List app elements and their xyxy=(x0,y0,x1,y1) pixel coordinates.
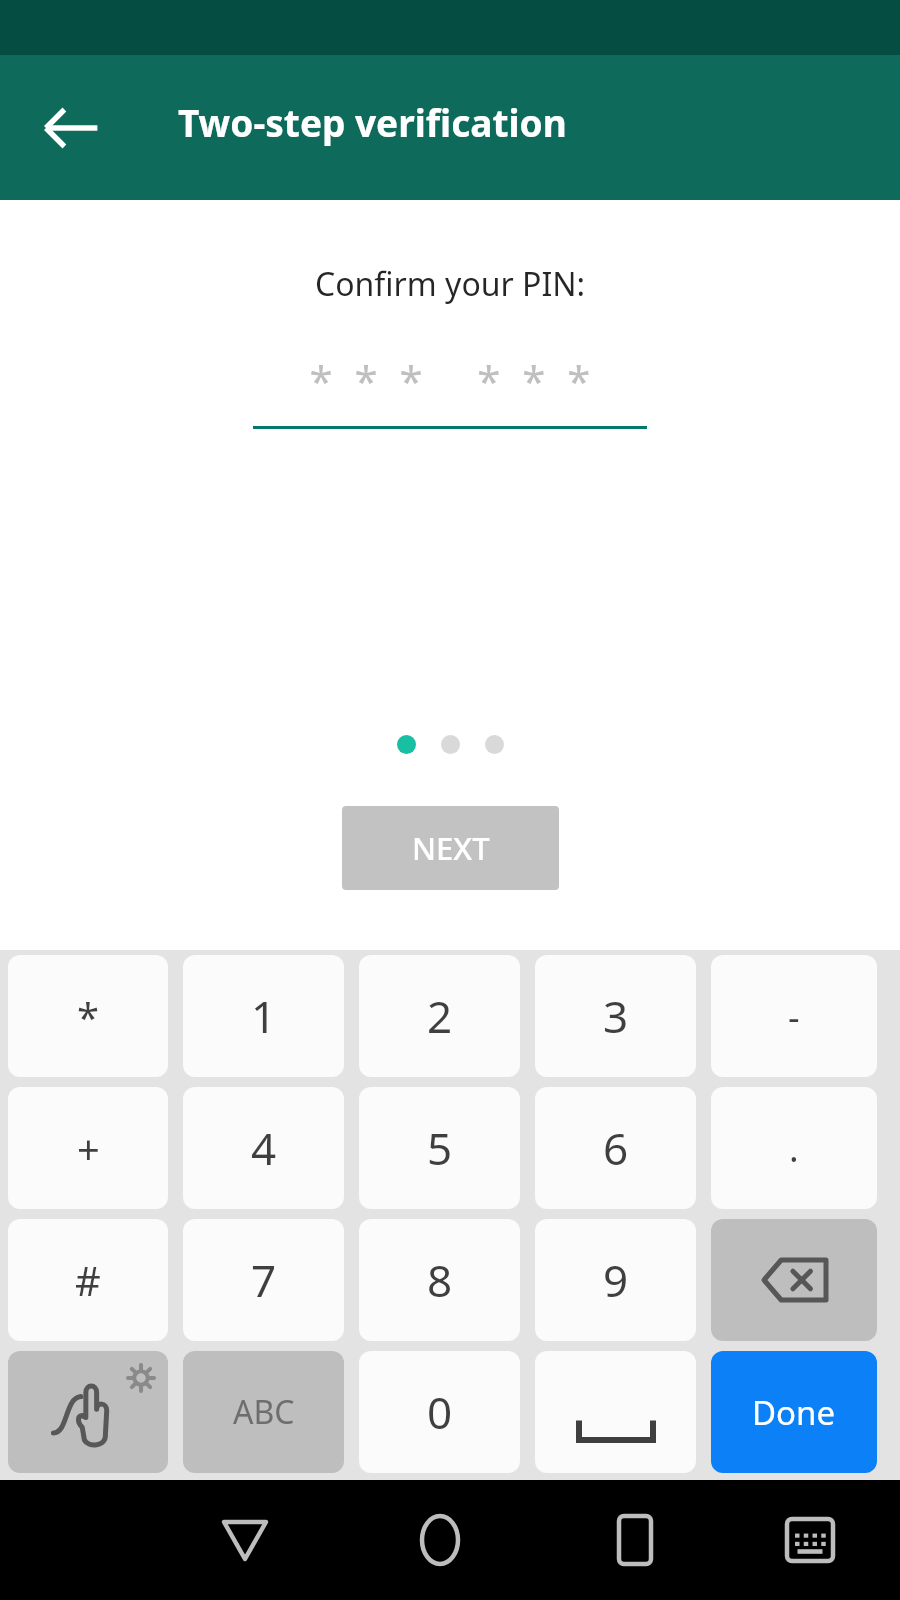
staticText: + xyxy=(77,1121,100,1175)
button[interactable]: Recent apps xyxy=(590,1510,680,1570)
button[interactable]: 7 xyxy=(183,1219,344,1341)
staticText: * * * * * * xyxy=(253,352,647,409)
staticText: Done xyxy=(752,1390,836,1435)
staticText: 8 xyxy=(427,1250,453,1310)
staticText: 0 xyxy=(427,1382,453,1442)
staticText: * xyxy=(77,989,100,1043)
button[interactable]: Space xyxy=(535,1351,696,1473)
staticText: 1 xyxy=(251,986,277,1046)
staticText: - xyxy=(788,992,800,1041)
staticText: NEXT xyxy=(412,827,490,869)
button[interactable]: * xyxy=(8,955,168,1077)
staticText: 3 xyxy=(603,986,629,1046)
button[interactable]: 6 xyxy=(535,1087,696,1209)
staticText: 5 xyxy=(427,1118,453,1178)
button[interactable]: 9 xyxy=(535,1219,696,1341)
staticText: # xyxy=(75,1253,101,1307)
staticText: . xyxy=(789,1124,799,1173)
staticText: Confirm your PIN: xyxy=(315,262,586,306)
button[interactable]: + xyxy=(8,1087,168,1209)
staticText: 7 xyxy=(251,1250,277,1310)
button[interactable]: 0 xyxy=(359,1351,520,1473)
button[interactable]: Backspace xyxy=(711,1219,877,1341)
button[interactable]: . xyxy=(711,1087,877,1209)
staticText: 2 xyxy=(427,986,453,1046)
button[interactable]: 8 xyxy=(359,1219,520,1341)
button[interactable]: NEXT xyxy=(342,806,559,890)
button[interactable]: # xyxy=(8,1219,168,1341)
button[interactable]: - xyxy=(711,955,877,1077)
staticText: 9 xyxy=(603,1250,629,1310)
staticText: ABC xyxy=(233,1390,295,1434)
button[interactable]: ABC xyxy=(183,1351,344,1473)
button[interactable]: 3 xyxy=(535,955,696,1077)
button[interactable]: Back xyxy=(38,95,104,161)
button[interactable]: Handwriting input xyxy=(8,1351,168,1473)
button[interactable]: 2 xyxy=(359,955,520,1077)
button[interactable]: Home xyxy=(395,1510,485,1570)
button[interactable]: 1 xyxy=(183,955,344,1077)
staticText: 4 xyxy=(251,1118,277,1178)
button[interactable]: 5 xyxy=(359,1087,520,1209)
button[interactable]: Switch keyboard xyxy=(765,1510,855,1570)
button[interactable]: 4 xyxy=(183,1087,344,1209)
staticText: Two-step verification xyxy=(178,97,567,147)
button[interactable]: Back xyxy=(200,1510,290,1570)
staticText: 6 xyxy=(603,1118,629,1178)
button[interactable]: Done xyxy=(711,1351,877,1473)
